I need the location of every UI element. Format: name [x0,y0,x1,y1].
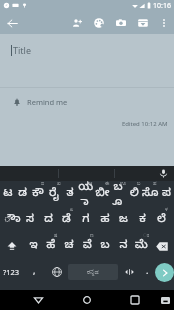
staticText: ಕ [139,213,146,228]
button[interactable]: More options [154,13,174,33]
staticText: ನ [119,239,128,254]
button[interactable]: ಗ [76,207,95,233]
button[interactable]: Change color [88,12,110,34]
button[interactable]: ಜ [114,207,133,233]
button[interactable]: ಕೌ [30,181,46,207]
button[interactable]: ಡ [15,181,30,207]
button[interactable]: Back [28,290,48,310]
staticText: ಟ [3,187,13,202]
staticText: ಪ [162,187,171,202]
staticText: ಕನ್ನಡ [87,269,99,276]
button[interactable]: ಹ [95,207,114,233]
staticText: ವೆ [83,239,92,254]
staticText: ಬೂ [110,181,126,207]
button[interactable]: Enter [155,263,174,282]
button[interactable]: Voice input [157,167,170,180]
button[interactable]: ಬೀ [94,181,110,207]
button[interactable]: . [140,259,155,285]
button[interactable]: ಮೆ [132,233,150,259]
staticText: , [33,264,36,276]
staticText: ಖ [57,181,61,186]
staticText: ಸ [26,213,34,228]
button[interactable]: Add collaborator [66,12,88,34]
button[interactable]: ಸ [21,207,39,233]
staticText: ಜ [119,213,128,228]
staticText: ಬ [137,181,141,186]
staticText: ಗ [82,213,90,228]
button[interactable]: ಲಿ [126,181,142,207]
staticText: ?123 [3,267,20,277]
staticText: ಏ [70,207,74,212]
button[interactable]: ಕ [133,207,152,233]
staticText: ಈ [105,181,110,186]
staticText: ಊ [120,181,126,186]
button[interactable]: ಯಾ [78,181,94,207]
button[interactable]: ಹೆ [42,233,60,259]
staticText: ಳ [165,207,168,212]
button[interactable]: Archive [132,12,154,34]
staticText: . [146,264,149,276]
button[interactable]: Shift [0,233,24,259]
staticText: ಯಾ [78,181,94,207]
staticText: ಬ [100,239,110,254]
staticText: ಹೆ [46,239,56,254]
staticText: ಹ [153,181,157,186]
staticText: ಮೆ [135,239,148,254]
button[interactable]: ಬೂ [110,181,126,207]
button[interactable]: ಲೆ [152,207,171,233]
staticText: ೌಾ [4,213,21,228]
button[interactable]: ನ [114,233,132,259]
button[interactable]: ಇ [24,233,42,259]
button[interactable]: ವೆ [78,233,96,259]
staticText: ತ [66,187,74,202]
staticText: ಇ [29,239,38,254]
staticText: ಸೊ [142,187,158,202]
button[interactable]: ದ [39,207,57,233]
button[interactable]: , [23,259,46,285]
button[interactable]: Back [2,13,22,33]
button[interactable]: ರೈ [46,181,62,207]
staticText: ಬೀ [95,187,110,202]
staticText: Title [13,44,31,56]
button[interactable]: Add image [110,12,132,34]
staticText: ರೈ [49,187,59,202]
staticText: ಷ [54,233,58,238]
staticText: ಚ [64,239,74,254]
button[interactable]: Switch language [46,259,67,285]
button[interactable]: ೌಾ [3,207,21,233]
staticText: ಂ [143,233,150,238]
button[interactable]: ಕನ್ನಡ [68,264,118,280]
button[interactable]: Remind me [0,93,174,111]
staticText: ಲೆ [157,213,166,228]
button[interactable]: Hide keyboard [156,291,174,309]
button[interactable]: ಸೊ [142,181,158,207]
staticText: 10:16 [153,1,171,11]
staticText: ಡೆ [62,213,71,228]
staticText: ಣ [90,233,94,238]
staticText: ಡ [18,187,27,202]
button[interactable]: Backspace [150,233,174,259]
button[interactable]: ?123 [0,259,23,285]
button[interactable]: ಡೆ [57,207,76,233]
button[interactable]: ಚ [60,233,78,259]
button[interactable]: ಟ [0,181,15,207]
staticText: ಕೌ [32,187,44,202]
button[interactable]: ತ [62,181,78,207]
button[interactable]: Recent apps [125,290,145,310]
staticText: ಆ [89,181,93,186]
button[interactable]: ಪ [158,181,174,207]
button[interactable]: ಬ [96,233,114,259]
staticText: ಹ [100,213,110,228]
staticText: Remind me [27,97,68,107]
button[interactable]: Home [77,290,97,310]
staticText: ದ [44,213,53,228]
staticText: Edited 10:12 AM [122,120,168,128]
staticText: ಐ [41,181,45,186]
button[interactable]: Cursor control [119,259,140,285]
staticText: ಲಿ [130,187,139,202]
